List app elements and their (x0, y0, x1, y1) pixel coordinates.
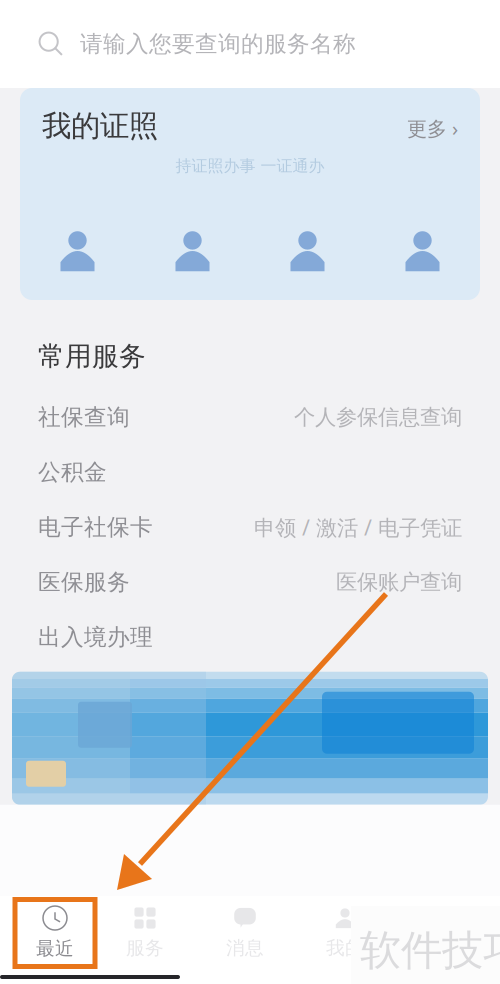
button[interactable]: 电子社保卡 (0, 500, 500, 555)
button[interactable]: 医保服务 (0, 555, 500, 610)
button[interactable]: 公积金 (0, 445, 500, 500)
button[interactable]: 请输入您要查询的服务名称 (0, 0, 500, 88)
staticText: 医保服务 (38, 568, 130, 596)
button[interactable]: Certificate (20, 228, 135, 274)
button[interactable]: 服务 (95, 899, 195, 966)
button[interactable]: Certificate (135, 228, 250, 274)
button[interactable]: 更多 › (407, 115, 458, 142)
button[interactable]: Promotion banner (0, 672, 500, 805)
staticText: 服务 (126, 936, 164, 959)
staticText: 更多 › (407, 115, 458, 142)
staticText: 我的 (326, 936, 364, 959)
staticText: 公积金 (38, 458, 107, 486)
button[interactable]: Certificate (365, 228, 480, 274)
button[interactable]: Certificate (250, 228, 365, 274)
button[interactable]: 出入境办理 (0, 610, 500, 665)
staticText: 消息 (226, 936, 264, 959)
staticText: 医保账户查询 (336, 569, 462, 595)
staticText: 最近 (36, 937, 74, 960)
staticText: 我的证照 (42, 108, 158, 144)
staticText: 社保查询 (38, 403, 130, 431)
staticText: 软件技巧 (360, 925, 500, 976)
staticText: 常用服务 (38, 340, 146, 373)
button[interactable]: 我的 (295, 899, 395, 966)
button[interactable]: 最近 (5, 899, 95, 966)
staticText: 申领 / 激活 / 电子凭证 (254, 513, 462, 541)
staticText: 持证照办事 一证通办 (175, 156, 324, 176)
staticText: 出入境办理 (38, 623, 153, 651)
staticText: 电子社保卡 (38, 513, 153, 541)
staticText: 请输入您要查询的服务名称 (80, 30, 356, 58)
button[interactable]: 消息 (195, 899, 295, 966)
staticText: 个人参保信息查询 (294, 404, 462, 430)
button[interactable]: 社保查询 (0, 390, 500, 445)
